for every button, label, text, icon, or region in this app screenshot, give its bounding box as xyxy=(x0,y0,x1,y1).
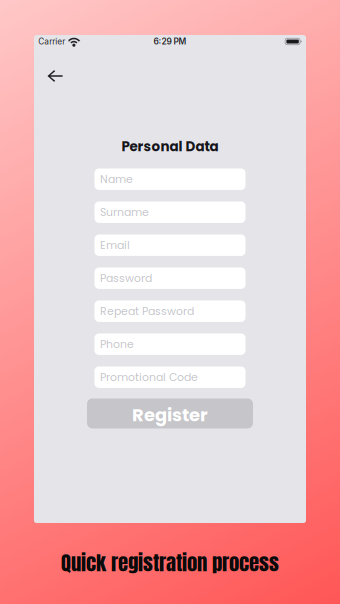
staticText: Personal Data xyxy=(121,137,218,156)
staticText: Name xyxy=(100,172,133,187)
button[interactable]: Phone xyxy=(94,333,245,355)
button[interactable]: Repeat Password xyxy=(94,300,245,322)
button[interactable]: Name xyxy=(94,168,245,190)
staticText: Phone xyxy=(100,337,134,352)
button[interactable]: Promotional Code xyxy=(94,366,245,388)
staticText: Register xyxy=(132,402,208,427)
button[interactable]: Back xyxy=(38,60,72,92)
staticText: Email xyxy=(100,238,130,253)
button[interactable]: Register xyxy=(87,398,253,428)
button[interactable]: Email xyxy=(94,234,245,256)
staticText: Surname xyxy=(100,205,149,220)
button[interactable]: Surname xyxy=(94,201,245,223)
staticText: Quick registration process xyxy=(61,547,279,578)
staticText: Carrier xyxy=(38,36,65,46)
staticText: 6:29 PM xyxy=(153,36,186,47)
staticText: Password xyxy=(100,271,152,286)
button[interactable]: Password xyxy=(94,267,245,289)
staticText: Promotional Code xyxy=(100,370,198,385)
staticText: Repeat Password xyxy=(100,304,194,319)
